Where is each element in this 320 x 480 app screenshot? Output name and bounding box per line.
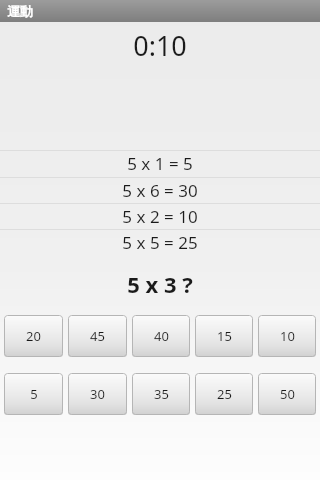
staticText: 5 x 6 = 30 [122,179,198,202]
staticText: 45 [90,327,105,345]
staticText: 35 [154,385,169,403]
staticText: 15 [217,327,232,345]
button[interactable]: 20 [4,315,63,357]
button[interactable]: 15 [195,315,253,357]
button[interactable]: 35 [132,373,190,415]
button[interactable]: 5 x 6 = 30 [0,177,320,203]
staticText: 5 x 5 = 25 [122,231,198,254]
button[interactable]: 25 [195,373,253,415]
staticText: 0:10 [133,27,187,64]
staticText: 5 x 2 = 10 [122,205,198,228]
button[interactable]: 30 [68,373,127,415]
staticText: 10 [280,327,295,345]
staticText: 5 [30,385,38,403]
staticText: 50 [280,385,295,403]
staticText: 5 x 3 ? [127,269,193,299]
staticText: 20 [26,327,41,345]
staticText: 30 [90,385,105,403]
staticText: 25 [217,385,232,403]
staticText: 5 x 1 = 5 [127,152,193,175]
button[interactable]: 50 [258,373,316,415]
staticText: 40 [154,327,169,345]
button[interactable]: 5 x 1 = 5 [0,150,320,177]
button[interactable]: 5 [4,373,63,415]
button[interactable]: 5 x 5 = 25 [0,229,320,255]
button[interactable]: 5 x 2 = 10 [0,203,320,229]
button[interactable]: 10 [258,315,316,357]
button[interactable]: 40 [132,315,190,357]
staticText: 運動 [7,3,33,19]
button[interactable]: 45 [68,315,127,357]
